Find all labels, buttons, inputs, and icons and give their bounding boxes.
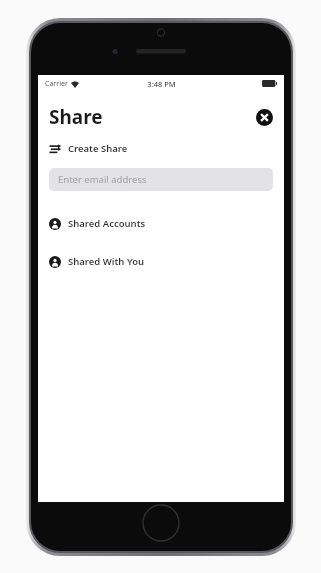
staticText: Shared With You [68,255,145,268]
staticText: 3:48 PM [147,79,176,89]
button[interactable]: Create Share [49,142,273,155]
staticText: Carrier [45,79,68,89]
staticText: Create Share [68,142,128,155]
button[interactable]: Close [256,109,273,126]
staticText: Enter email address [58,173,147,186]
staticText: Shared Accounts [68,217,146,230]
button[interactable]: Shared Accounts [49,217,273,230]
staticText: Share [49,104,103,130]
button[interactable]: Shared With You [49,255,273,268]
button[interactable]: Enter email address [49,168,273,191]
